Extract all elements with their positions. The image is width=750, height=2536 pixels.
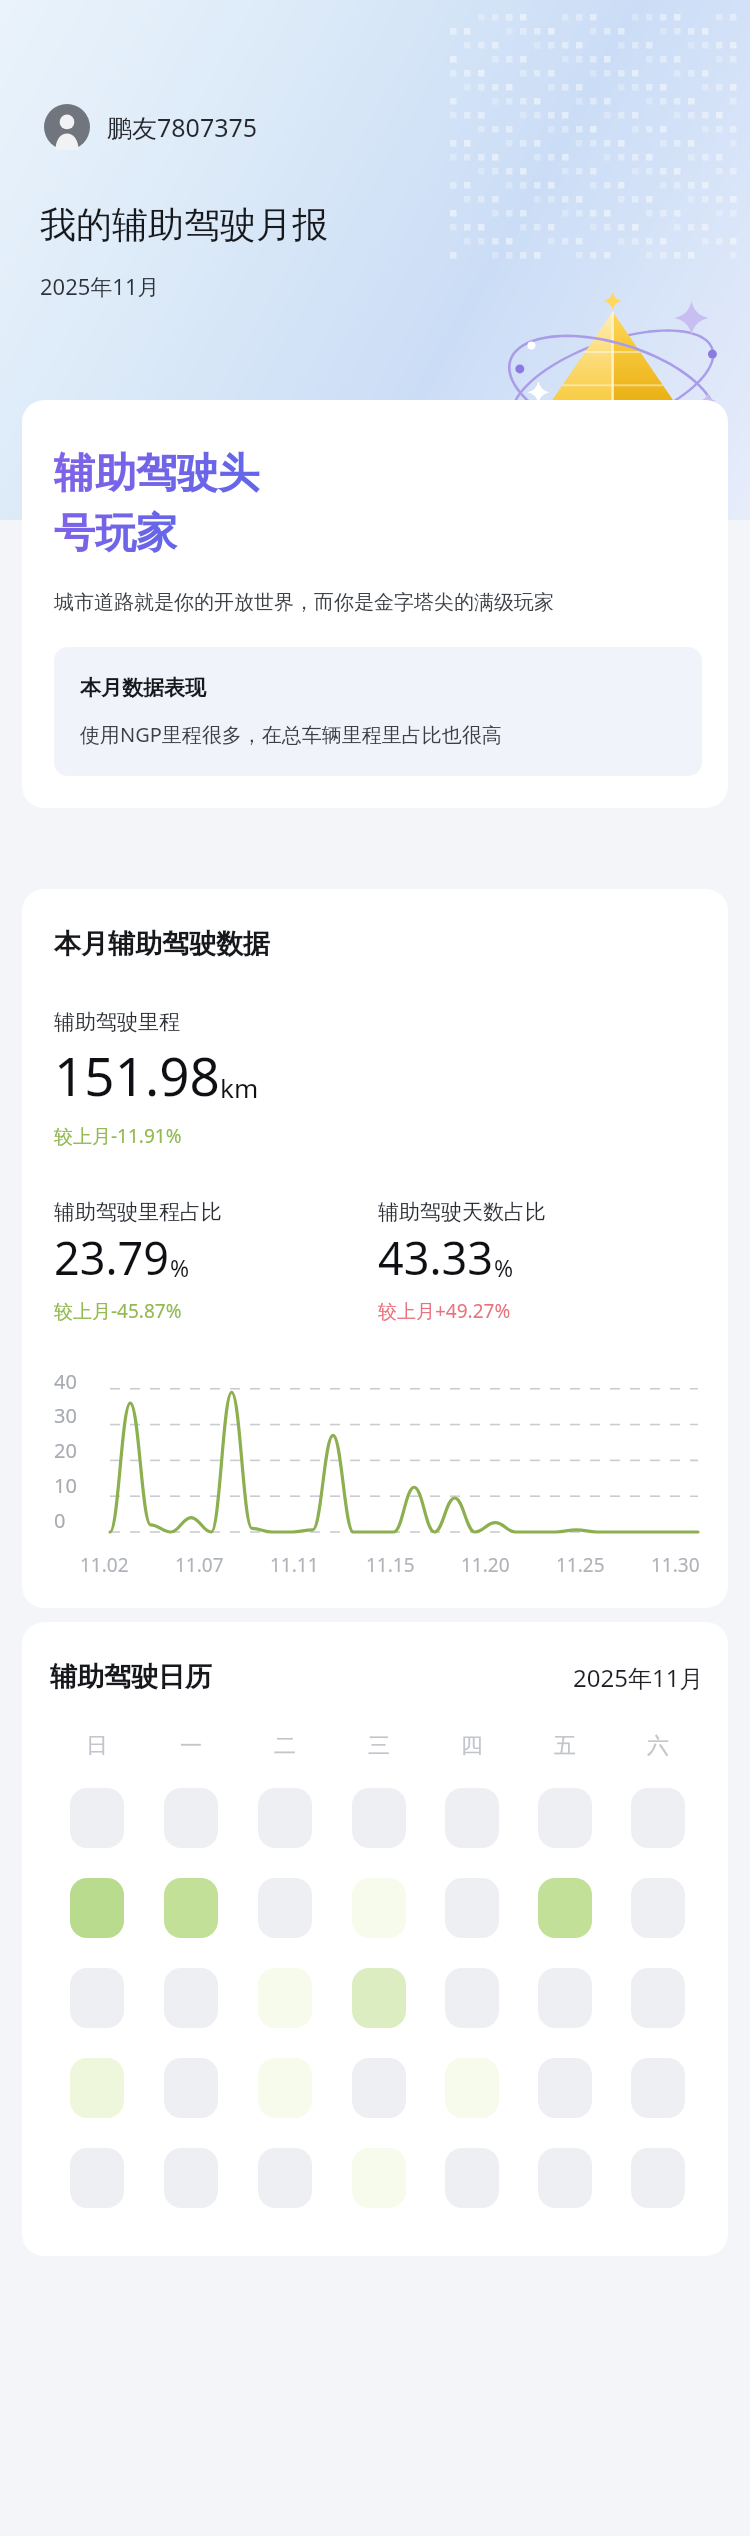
button[interactable]	[538, 1878, 592, 1938]
button[interactable]	[445, 1968, 499, 2028]
button[interactable]	[164, 1878, 218, 1938]
staticText: %	[494, 1252, 514, 1283]
staticText: 辅助驾驶天数占比	[378, 1199, 546, 1225]
button[interactable]	[352, 1788, 406, 1848]
staticText: 三	[368, 1732, 390, 1760]
staticText: 20	[54, 1437, 77, 1464]
staticText: 151.98	[54, 1039, 220, 1111]
staticText: 10	[54, 1472, 77, 1499]
staticText: 六	[647, 1732, 669, 1760]
button[interactable]: 本月辅助驾驶数据	[22, 889, 728, 1608]
staticText: 辅助驾驶里程占比	[54, 1199, 222, 1225]
button[interactable]	[164, 2058, 218, 2118]
staticText: 本月辅助驾驶数据	[54, 927, 270, 961]
button[interactable]	[164, 1788, 218, 1848]
staticText: 使用NGP里程很多，在总车辆里程里占比也很高	[80, 721, 502, 748]
staticText: 号玩家	[54, 508, 177, 560]
button[interactable]	[445, 1878, 499, 1938]
button[interactable]	[538, 1968, 592, 2028]
button[interactable]	[258, 2058, 312, 2118]
staticText: 城市道路就是你的开放世界，而你是金字塔尖的满级玩家	[54, 590, 554, 615]
staticText: 11.07	[175, 1552, 224, 1578]
button[interactable]	[258, 2148, 312, 2208]
staticText: km	[220, 1070, 259, 1105]
button[interactable]	[445, 2058, 499, 2118]
button[interactable]	[538, 2058, 592, 2118]
button[interactable]	[631, 1968, 685, 2028]
button[interactable]	[538, 1788, 592, 1848]
button[interactable]	[352, 1878, 406, 1938]
staticText: 较上月-45.87%	[54, 1298, 182, 1324]
button[interactable]	[631, 2148, 685, 2208]
staticText: 30	[54, 1402, 77, 1429]
staticText: 五	[554, 1732, 576, 1760]
button[interactable]	[445, 2148, 499, 2208]
staticText: 11.02	[80, 1552, 129, 1578]
button[interactable]: 辅助驾驶天数占比	[378, 1199, 702, 1324]
staticText: 鹏友7807375	[107, 110, 258, 144]
button[interactable]	[631, 1878, 685, 1938]
button[interactable]	[352, 2148, 406, 2208]
button[interactable]	[164, 2148, 218, 2208]
staticText: 四	[461, 1732, 483, 1760]
button[interactable]	[70, 2148, 124, 2208]
staticText: 0	[54, 1507, 66, 1534]
staticText: 23.79	[54, 1227, 170, 1288]
staticText: 2025年11月	[573, 1661, 704, 1694]
staticText: 43.33	[378, 1227, 494, 1288]
button[interactable]	[631, 2058, 685, 2118]
staticText: 40	[54, 1368, 77, 1395]
button[interactable]	[258, 1788, 312, 1848]
button[interactable]	[70, 2058, 124, 2118]
button[interactable]: 本月数据表现	[54, 647, 702, 776]
staticText: 辅助驾驶头	[54, 448, 259, 500]
button[interactable]: 辅助驾驶里程占比	[54, 1199, 378, 1324]
button[interactable]	[70, 1968, 124, 2028]
staticText: 2025年11月	[40, 271, 160, 301]
other: Profile avatar	[44, 104, 90, 150]
button[interactable]	[258, 1878, 312, 1938]
staticText: 日	[86, 1732, 108, 1760]
button[interactable]	[258, 1968, 312, 2028]
staticText: 较上月+49.27%	[378, 1298, 511, 1324]
staticText: %	[170, 1252, 190, 1283]
button[interactable]: 辅助驾驶头	[22, 400, 728, 808]
staticText: 较上月-11.91%	[54, 1123, 182, 1149]
staticText: 辅助驾驶日历	[50, 1660, 212, 1694]
staticText: 11.30	[651, 1552, 700, 1578]
staticText: 辅助驾驶里程	[54, 1009, 180, 1035]
staticText: 11.25	[556, 1552, 605, 1578]
staticText: 11.11	[270, 1552, 319, 1578]
button[interactable]: Profile avatar	[44, 104, 258, 150]
button[interactable]	[445, 1788, 499, 1848]
button[interactable]: 辅助驾驶日历	[22, 1622, 728, 2256]
button[interactable]	[352, 1968, 406, 2028]
staticText: 11.15	[366, 1552, 415, 1578]
button[interactable]	[631, 1788, 685, 1848]
staticText: 二	[274, 1732, 296, 1760]
button[interactable]	[70, 1878, 124, 1938]
button[interactable]	[538, 2148, 592, 2208]
button[interactable]	[164, 1968, 218, 2028]
button[interactable]	[352, 2058, 406, 2118]
staticText: 本月数据表现	[80, 675, 206, 701]
button[interactable]	[70, 1788, 124, 1848]
staticText: 11.20	[461, 1552, 510, 1578]
staticText: 我的辅助驾驶月报	[40, 202, 328, 247]
staticText: 一	[180, 1732, 202, 1760]
